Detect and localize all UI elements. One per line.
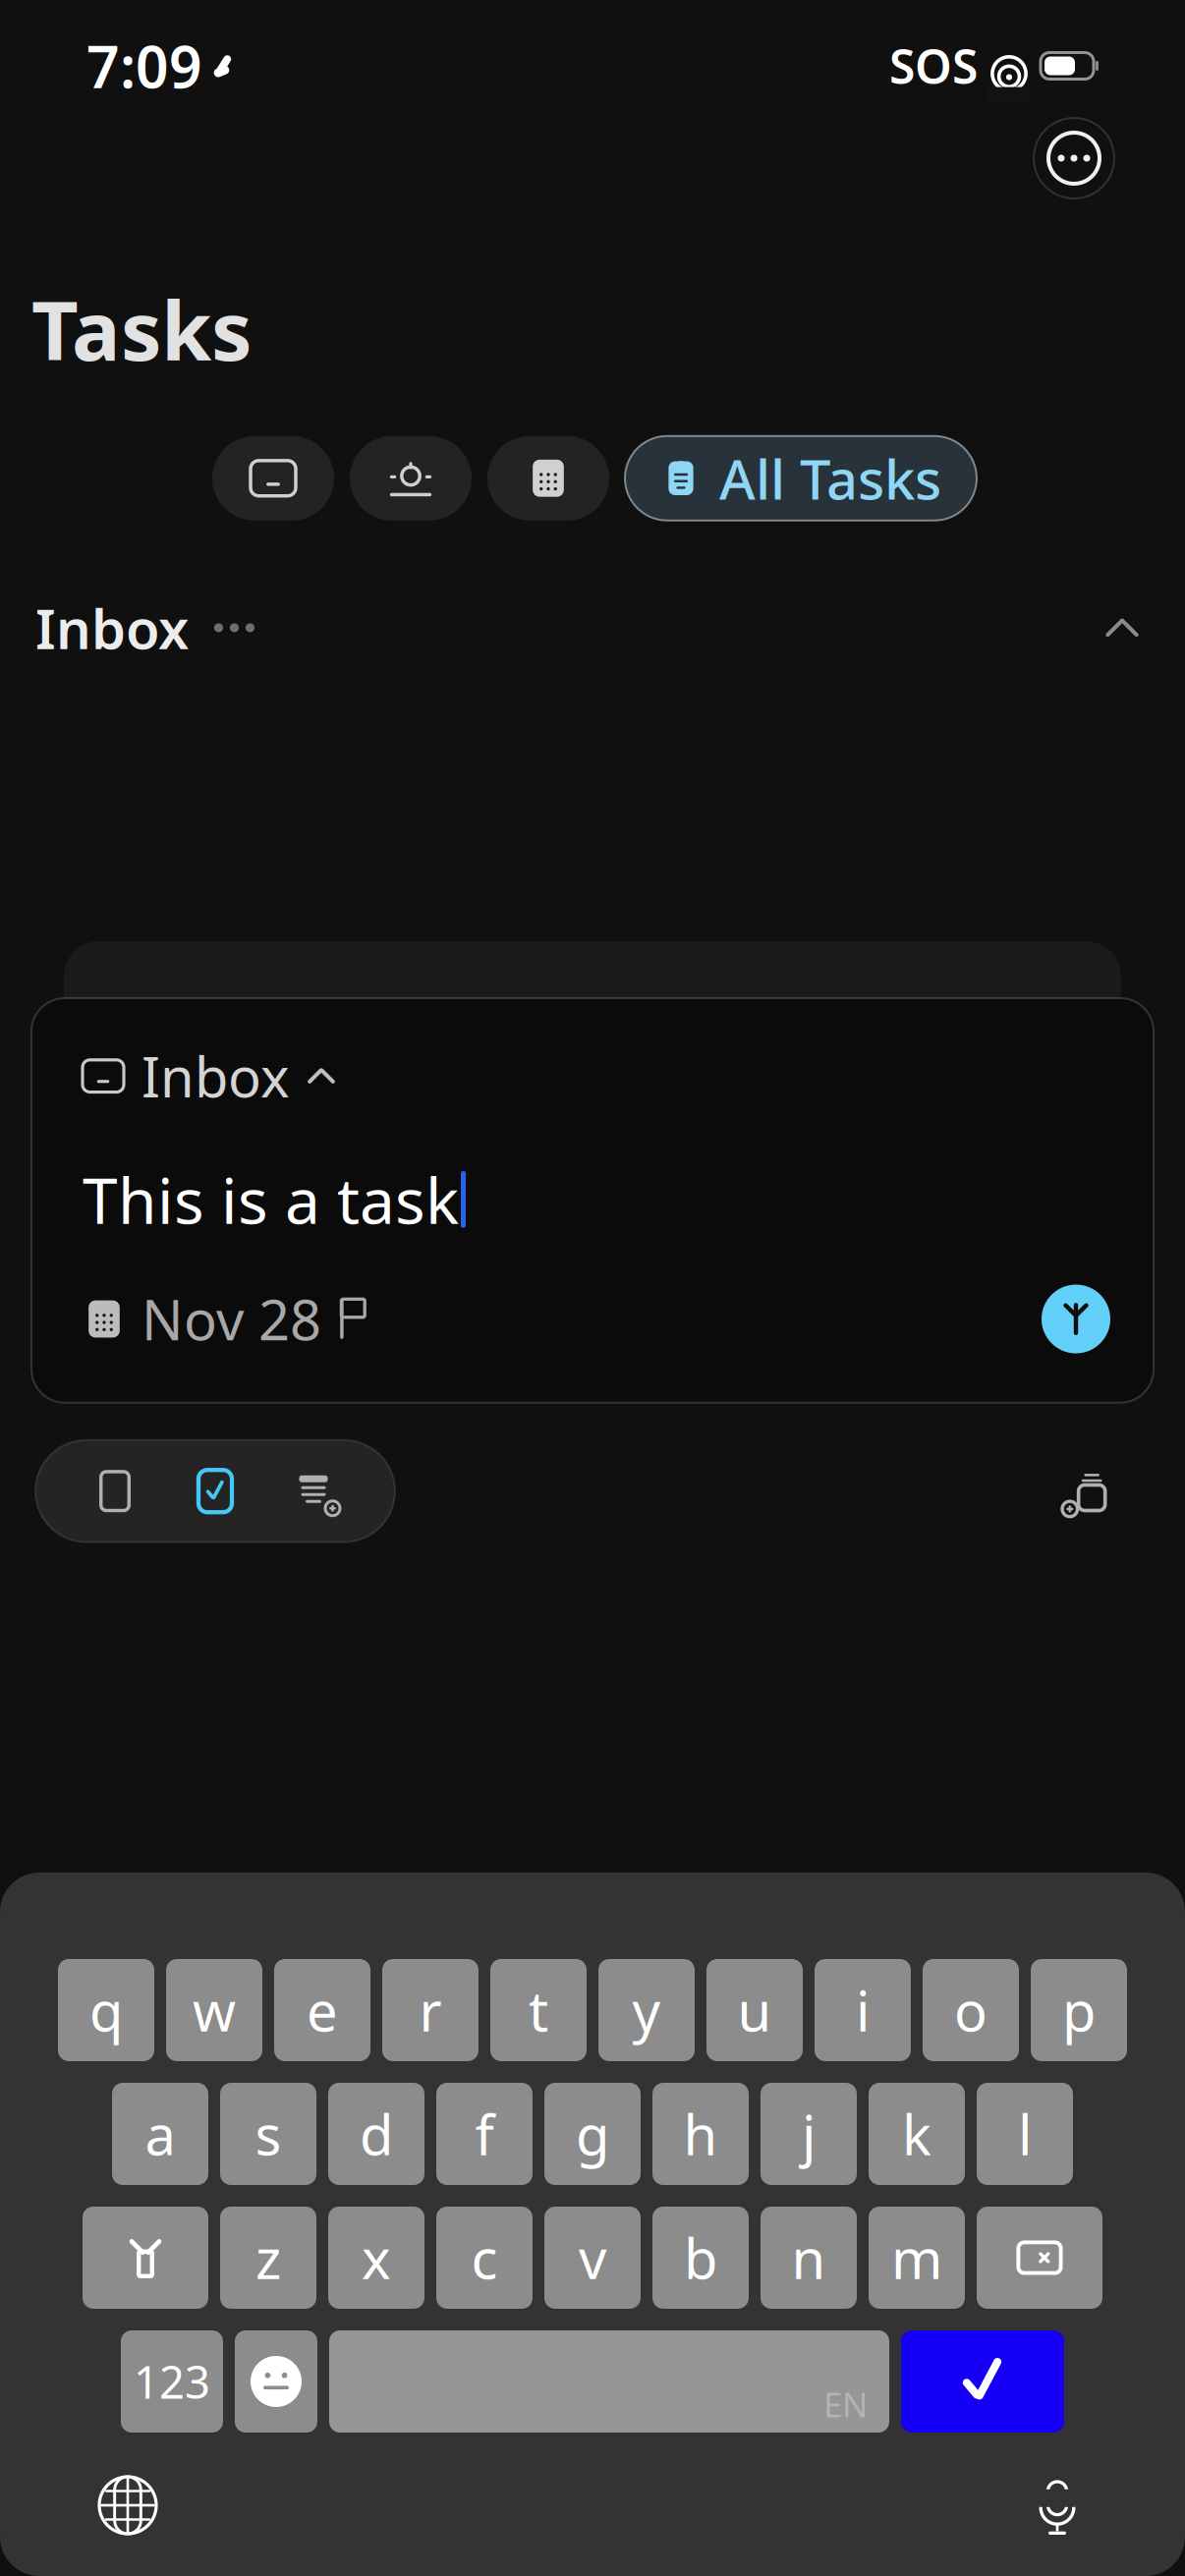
button[interactable]: Backspace bbox=[977, 2207, 1102, 2309]
button[interactable]: t bbox=[490, 1959, 587, 2061]
staticText: 123 bbox=[134, 2352, 210, 2411]
button[interactable]: n bbox=[761, 2207, 857, 2309]
button[interactable]: o bbox=[923, 1959, 1019, 2061]
button[interactable]: e bbox=[274, 1959, 370, 2061]
button[interactable]: i bbox=[815, 1959, 911, 2061]
staticText: c bbox=[471, 2221, 498, 2294]
staticText: Inbox bbox=[141, 1039, 290, 1113]
button[interactable]: Done bbox=[901, 2330, 1064, 2433]
button[interactable]: y bbox=[598, 1959, 695, 2061]
button[interactable]: Inbox bbox=[35, 591, 254, 664]
staticText: f bbox=[475, 2097, 494, 2170]
staticText: d bbox=[360, 2097, 393, 2170]
button[interactable]: q bbox=[58, 1959, 154, 2061]
button[interactable]: c bbox=[436, 2207, 533, 2309]
button[interactable]: z bbox=[220, 2207, 316, 2309]
staticText: y bbox=[632, 1974, 661, 2047]
button[interactable]: u bbox=[706, 1959, 803, 2061]
staticText: u bbox=[737, 1974, 772, 2047]
button[interactable]: More options bbox=[1034, 118, 1114, 198]
button[interactable]: v bbox=[544, 2207, 641, 2309]
staticText: All Tasks bbox=[719, 442, 941, 515]
staticText: e bbox=[307, 1974, 338, 2047]
staticText: o bbox=[954, 1974, 987, 2047]
staticText: g bbox=[576, 2097, 609, 2170]
button[interactable]: m bbox=[869, 2207, 965, 2309]
button[interactable]: s bbox=[220, 2083, 316, 2185]
button[interactable]: Add detail bbox=[287, 1463, 344, 1520]
button[interactable]: Task bbox=[187, 1463, 244, 1520]
button[interactable]: x bbox=[328, 2207, 424, 2309]
staticText: q bbox=[89, 1974, 123, 2047]
button[interactable]: Inbox bbox=[83, 1039, 335, 1113]
staticText: l bbox=[1018, 2097, 1032, 2170]
button[interactable]: p bbox=[1031, 1959, 1127, 2061]
staticText: w bbox=[193, 1974, 236, 2047]
button[interactable]: Today filter bbox=[350, 436, 472, 521]
button[interactable]: w bbox=[166, 1959, 262, 2061]
button[interactable]: Inbox filter bbox=[212, 436, 334, 521]
staticText: x bbox=[362, 2221, 391, 2294]
button[interactable]: r bbox=[382, 1959, 479, 2061]
button[interactable]: Add list bbox=[1051, 1455, 1124, 1527]
staticText: 7:09 bbox=[86, 28, 202, 104]
staticText: i bbox=[856, 1974, 870, 2047]
staticText: m bbox=[891, 2221, 942, 2294]
staticText: p bbox=[1062, 1974, 1096, 2047]
staticText: Inbox bbox=[35, 591, 189, 664]
button[interactable]: All Tasks bbox=[625, 436, 977, 521]
staticText: This is a task bbox=[83, 1158, 459, 1241]
staticText: t bbox=[529, 1974, 548, 2047]
button[interactable]: l bbox=[977, 2083, 1073, 2185]
staticText: j bbox=[802, 2097, 816, 2170]
button[interactable]: g bbox=[544, 2083, 641, 2185]
button[interactable]: Add task bbox=[1042, 1285, 1110, 1353]
staticText: n bbox=[791, 2221, 826, 2294]
staticText: Nov 28 bbox=[141, 1282, 321, 1356]
button[interactable]: Space bbox=[329, 2330, 889, 2433]
button[interactable]: Note bbox=[86, 1463, 143, 1520]
staticText: Tasks bbox=[31, 275, 252, 383]
button[interactable]: Flag bbox=[321, 1291, 390, 1346]
staticText: a bbox=[145, 2097, 175, 2170]
staticText: r bbox=[419, 1974, 442, 2047]
button[interactable]: k bbox=[869, 2083, 965, 2185]
button[interactable]: Shift bbox=[83, 2207, 208, 2309]
button[interactable]: Scheduled filter bbox=[487, 436, 609, 521]
button[interactable]: j bbox=[761, 2083, 857, 2185]
button[interactable]: h bbox=[652, 2083, 749, 2185]
staticText: s bbox=[255, 2097, 282, 2170]
staticText: b bbox=[684, 2221, 717, 2294]
staticText: k bbox=[902, 2097, 931, 2170]
button[interactable]: 123 bbox=[121, 2330, 223, 2433]
staticText: h bbox=[683, 2097, 718, 2170]
button[interactable]: Collapse Inbox bbox=[1095, 604, 1150, 651]
staticText: EN bbox=[823, 2381, 868, 2427]
staticText: SOS bbox=[889, 34, 978, 97]
button[interactable]: d bbox=[328, 2083, 424, 2185]
button[interactable]: Nov 28 bbox=[83, 1282, 321, 1356]
button[interactable]: f bbox=[436, 2083, 533, 2185]
button[interactable]: Dictate bbox=[1010, 2458, 1104, 2552]
staticText: v bbox=[579, 2221, 606, 2294]
staticText: z bbox=[255, 2221, 281, 2294]
button[interactable]: Emoji bbox=[235, 2330, 317, 2433]
button[interactable]: a bbox=[112, 2083, 208, 2185]
button[interactable]: b bbox=[652, 2207, 749, 2309]
button[interactable]: Switch keyboard bbox=[81, 2458, 175, 2552]
